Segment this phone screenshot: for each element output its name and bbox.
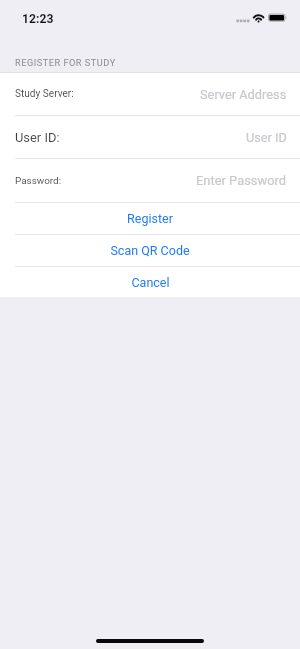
button[interactable]: Study Server: [0,73,300,115]
staticText: Register [127,211,173,226]
staticText: User ID: [15,130,60,145]
staticText: Password: [15,175,62,187]
other: Wi-Fi [252,13,265,23]
staticText: User ID [246,130,287,145]
button[interactable]: Scan QR Code [0,235,300,266]
staticText: Scan QR Code [110,243,190,258]
other: Battery [268,13,288,23]
staticText: REGISTER FOR STUDY [15,57,116,68]
staticText: Study Server: [15,88,74,100]
button[interactable]: User ID: [0,116,300,158]
button[interactable]: Password: [0,159,300,202]
staticText: Enter Password [196,173,287,188]
button[interactable]: Register [0,203,300,234]
staticText: Server Address [200,87,287,102]
other: Cellular signal [236,19,249,23]
button[interactable]: Cancel [0,267,300,297]
staticText: 12:23 [22,12,54,26]
staticText: Cancel [131,275,170,290]
